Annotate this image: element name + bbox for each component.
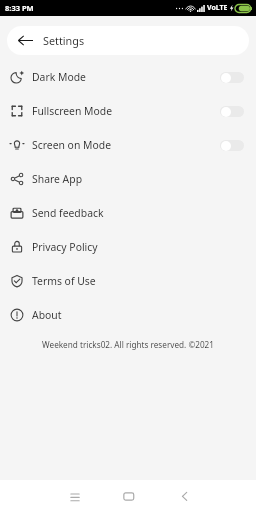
- button[interactable]: Dark Mode: [0, 60, 256, 94]
- staticText: Fullscreen Mode: [32, 104, 113, 118]
- button[interactable]: Screen on Mode: [0, 128, 256, 162]
- staticText: Send feedback: [32, 206, 104, 220]
- staticText: Settings: [43, 33, 85, 48]
- staticText: Privacy Policy: [32, 240, 98, 254]
- button[interactable]: Send feedback: [0, 196, 256, 230]
- staticText: Weekend tricks02. All rights reserved. ©…: [0, 339, 256, 350]
- button[interactable]: Fullscreen Mode: [0, 94, 256, 128]
- button[interactable]: Toggle: [220, 72, 244, 83]
- staticText: Share App: [32, 172, 83, 186]
- staticText: VoLTE: [207, 3, 228, 13]
- button[interactable]: Terms of Use: [0, 264, 256, 298]
- staticText: Screen on Mode: [32, 138, 111, 152]
- button[interactable]: About: [0, 298, 256, 332]
- button[interactable]: Home: [119, 490, 141, 506]
- button[interactable]: Toggle: [220, 106, 244, 117]
- staticText: About: [32, 308, 62, 322]
- button[interactable]: Back: [7, 26, 249, 55]
- staticText: Terms of Use: [32, 274, 96, 288]
- button[interactable]: Privacy Policy: [0, 230, 256, 264]
- button[interactable]: Recents: [66, 490, 88, 506]
- button[interactable]: Share App: [0, 162, 256, 196]
- button[interactable]: Toggle: [220, 140, 244, 151]
- staticText: 8:33 PM: [5, 3, 34, 13]
- staticText: Dark Mode: [32, 70, 86, 84]
- button[interactable]: Back: [18, 33, 33, 48]
- button[interactable]: Back: [174, 490, 196, 506]
